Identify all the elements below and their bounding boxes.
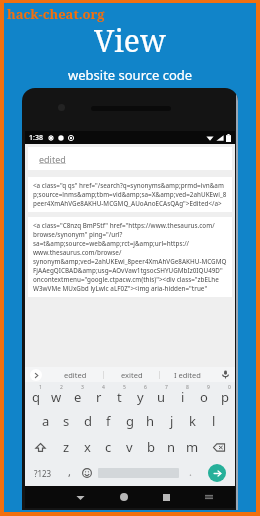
button[interactable]: h [140,408,161,434]
staticText: b [147,438,155,456]
button[interactable]: c [98,434,119,460]
staticText: 0 [228,384,231,391]
button[interactable]: k [182,408,203,434]
button[interactable]: 5 [109,382,130,408]
staticText: n [167,438,176,456]
staticText: hack-cheat.org [7,5,105,23]
staticText: 1 [39,384,42,391]
button[interactable]: Shift [25,434,56,460]
staticText: s [63,412,70,430]
button[interactable]: ?123 [25,460,60,486]
staticText: 4 [102,384,105,391]
button[interactable]: Enter [199,460,235,486]
button[interactable]: z [56,434,77,460]
button[interactable]: v [119,434,140,460]
staticText: 1:38 [29,133,43,143]
button[interactable]: j [161,408,182,434]
button[interactable]: Voice input [215,367,235,382]
staticText: g [126,412,134,430]
staticText: l [212,412,216,430]
staticText: 5 [123,384,126,391]
button[interactable]: 3 [67,382,88,408]
button[interactable]: x [77,434,98,460]
staticText: , [68,464,71,479]
button[interactable]: 2 [46,382,67,408]
button[interactable]: l [203,408,224,434]
button[interactable]: edited [28,147,232,170]
staticText: q [32,388,40,406]
staticText: o [200,388,208,406]
staticText: ?123 [34,468,52,479]
staticText: edited [39,153,66,165]
button[interactable]: n [161,434,182,460]
button[interactable]: Space [96,460,181,486]
staticText: 2 [60,384,63,391]
staticText: exited [121,370,143,380]
staticText: <a class="q qs" href="/search?q=synonyms… [33,181,227,208]
button[interactable]: 6 [130,382,151,408]
button[interactable]: 8 [172,382,193,408]
staticText: c [105,438,112,456]
staticText: j [170,412,174,430]
button[interactable]: s [56,408,77,434]
button[interactable]: 7 [151,382,172,408]
staticText: u [157,388,166,406]
staticText: a [42,412,50,430]
staticText: . [189,464,192,479]
button[interactable]: , [60,460,78,486]
button[interactable]: g [119,408,140,434]
staticText: edited [64,370,87,380]
staticText: 7 [165,384,168,391]
button[interactable]: Emoji [78,460,96,486]
button[interactable]: 4 [88,382,109,408]
button[interactable]: d [77,408,98,434]
button[interactable]: b [140,434,161,460]
staticText: website source code [68,66,193,84]
button[interactable]: Back [58,486,102,508]
staticText: f [106,412,111,430]
staticText: I edited [174,370,201,380]
button[interactable]: 0 [214,382,235,408]
staticText: <a class="C8nzq BmP5tf" href="https://ww… [33,221,227,293]
staticText: r [96,388,102,406]
staticText: p [221,388,229,406]
button[interactable]: 9 [193,382,214,408]
staticText: t [117,388,122,406]
staticText: v [126,438,133,456]
button[interactable]: . [181,460,199,486]
button[interactable]: m [182,434,203,460]
staticText: m [186,438,199,456]
staticText: w [51,388,62,406]
staticText: h [146,412,155,430]
button[interactable]: edited [47,367,103,382]
button[interactable]: More suggestions [25,367,47,382]
staticText: View [94,20,166,61]
staticText: k [189,412,196,430]
staticText: d [84,412,92,430]
button[interactable]: a [35,408,56,434]
button[interactable]: exited [104,367,159,382]
staticText: 8 [186,384,189,391]
staticText: 9 [207,384,210,391]
staticText: 3 [81,384,84,391]
button[interactable]: Home [102,486,145,508]
staticText: x [84,438,91,456]
staticText: z [63,438,70,456]
button[interactable]: Menu [188,486,229,508]
staticText: e [74,388,82,406]
button[interactable]: Recent apps [145,486,188,508]
button[interactable]: f [98,408,119,434]
staticText: y [137,388,144,406]
button[interactable]: 1 [25,382,46,408]
staticText: i [181,388,185,406]
staticText: 6 [144,384,147,391]
button[interactable]: I edited [160,367,215,382]
button[interactable]: Backspace [203,434,235,460]
